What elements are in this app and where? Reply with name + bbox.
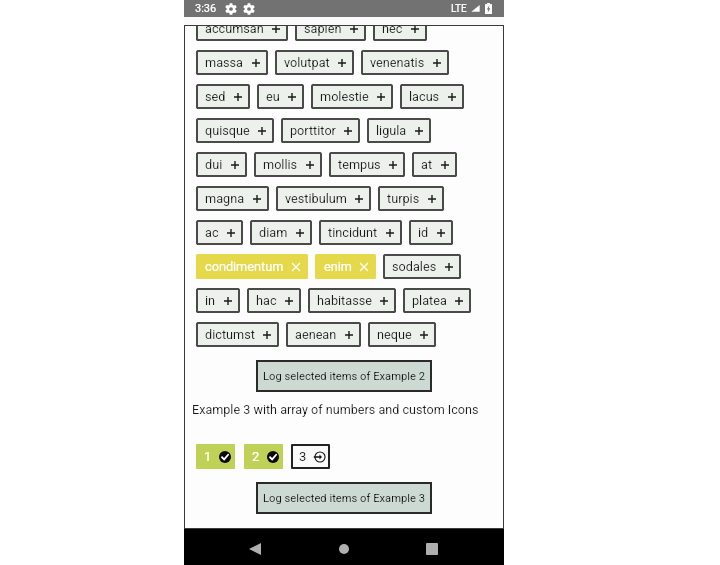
button[interactable]: turpis (378, 186, 444, 211)
staticText: sapien (304, 25, 342, 36)
staticText: in (205, 293, 216, 308)
button[interactable]: 1 (196, 444, 235, 469)
button[interactable]: platea (403, 288, 471, 313)
button[interactable]: massa (196, 50, 268, 75)
staticText: sodales (392, 259, 437, 274)
staticText: magna (205, 191, 245, 206)
staticText: condimentum (205, 259, 284, 274)
staticText: 1 (204, 449, 212, 464)
staticText: vestibulum (285, 191, 347, 206)
button[interactable]: sed (196, 84, 250, 109)
button[interactable]: aenean (286, 322, 361, 347)
staticText: diam (259, 225, 288, 240)
staticText: at (421, 157, 433, 172)
staticText: 3:36 (195, 2, 217, 15)
staticText: tempus (338, 157, 381, 172)
staticText: habitasse (317, 293, 372, 308)
button[interactable]: neque (368, 322, 436, 347)
button[interactable]: accumsan (196, 25, 288, 41)
button[interactable]: porttitor (281, 118, 360, 143)
staticText: dui (205, 157, 223, 172)
staticText: ligula (376, 123, 407, 138)
button[interactable]: ac (196, 220, 243, 245)
button[interactable]: nec (373, 25, 427, 41)
button[interactable]: at (412, 152, 457, 177)
staticText: eu (266, 89, 280, 104)
button[interactable]: Back (244, 538, 266, 560)
button[interactable]: id (409, 220, 453, 245)
button[interactable]: habitasse (308, 288, 396, 313)
staticText: tincidunt (328, 225, 378, 240)
button[interactable]: Log selected items of Example 2 (256, 360, 432, 392)
staticText: nec (382, 25, 403, 36)
staticText: massa (205, 55, 244, 70)
button[interactable]: vestibulum (276, 186, 371, 211)
button[interactable]: enim (315, 254, 376, 279)
button[interactable]: in (196, 288, 240, 313)
button[interactable]: Home (333, 538, 355, 560)
staticText: mollis (263, 157, 298, 172)
staticText: volutpat (284, 55, 330, 70)
button[interactable]: mollis (254, 152, 322, 177)
button[interactable]: lacus (400, 84, 464, 109)
staticText: Log selected items of Example 3 (263, 492, 425, 505)
button[interactable]: condimentum (196, 254, 308, 279)
button[interactable]: eu (257, 84, 304, 109)
staticText: porttitor (290, 123, 336, 138)
button[interactable]: tempus (329, 152, 405, 177)
button[interactable]: Log selected items of Example 3 (256, 482, 432, 514)
staticText: hac (256, 293, 277, 308)
staticText: accumsan (205, 25, 264, 36)
button[interactable]: hac (247, 288, 301, 313)
staticText: turpis (387, 191, 420, 206)
button[interactable]: 2 (244, 444, 283, 469)
button[interactable]: volutpat (275, 50, 354, 75)
staticText: ac (205, 225, 219, 240)
staticText: neque (377, 327, 412, 342)
staticText: platea (412, 293, 447, 308)
button[interactable]: magna (196, 186, 269, 211)
staticText: LTE (451, 3, 467, 15)
button[interactable]: diam (250, 220, 312, 245)
button[interactable]: molestie (311, 84, 393, 109)
staticText: aenean (295, 327, 337, 342)
button[interactable]: sodales (383, 254, 461, 279)
staticText: Log selected items of Example 2 (263, 370, 425, 383)
staticText: Example 3 with array of numbers and cust… (192, 402, 479, 417)
staticText: lacus (409, 89, 440, 104)
staticText: enim (324, 259, 352, 274)
staticText: id (418, 225, 429, 240)
button[interactable]: 3 (291, 444, 330, 469)
staticText: molestie (320, 89, 369, 104)
button[interactable]: ligula (367, 118, 431, 143)
button[interactable]: tincidunt (319, 220, 402, 245)
button[interactable]: sapien (295, 25, 366, 41)
button[interactable]: venenatis (361, 50, 449, 75)
button[interactable]: quisque (196, 118, 274, 143)
staticText: 3 (299, 449, 307, 464)
staticText: quisque (205, 123, 250, 138)
staticText: dictumst (205, 327, 255, 342)
button[interactable]: dui (196, 152, 247, 177)
button[interactable]: Recent apps (421, 538, 443, 560)
staticText: sed (205, 89, 226, 104)
staticText: 2 (252, 449, 260, 464)
button[interactable]: dictumst (196, 322, 279, 347)
staticText: venenatis (370, 55, 425, 70)
